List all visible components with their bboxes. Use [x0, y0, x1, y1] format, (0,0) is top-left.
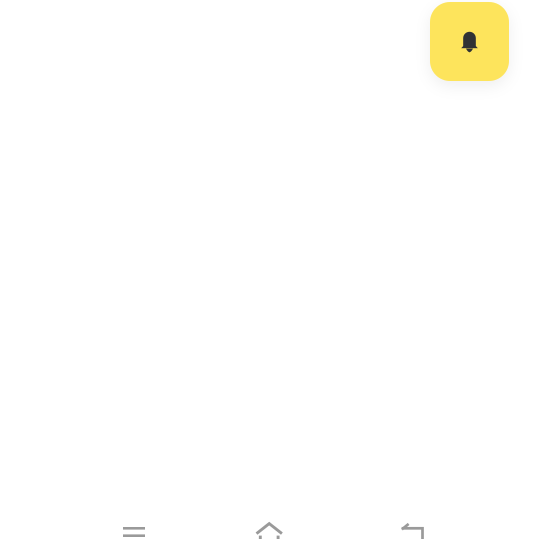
button[interactable]: Home [211, 493, 301, 539]
button[interactable]: Recent apps [89, 493, 179, 539]
button[interactable]: Back [355, 493, 445, 539]
button[interactable]: Notifications [430, 2, 509, 81]
